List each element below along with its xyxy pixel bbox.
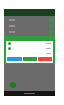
button[interactable] [6,17,53,23]
button[interactable] [6,23,53,29]
button[interactable] [6,51,53,56]
button[interactable] [6,46,53,51]
button[interactable]: Add [10,82,16,88]
button[interactable] [6,41,53,46]
button[interactable] [6,29,53,35]
